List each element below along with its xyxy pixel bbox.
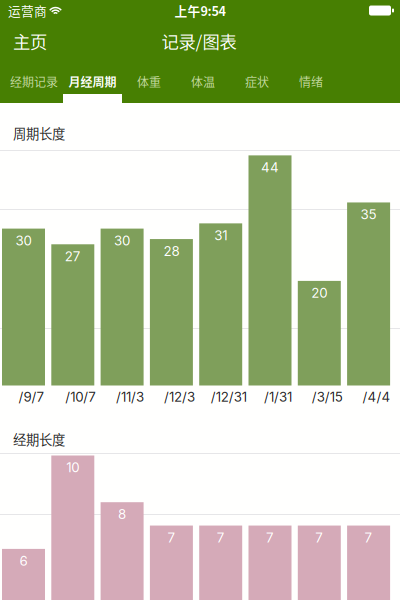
staticText: 主页 xyxy=(13,28,47,54)
button[interactable]: 体重 xyxy=(122,64,176,103)
staticText: /11/3 xyxy=(116,389,144,405)
staticText: /10/7 xyxy=(65,389,96,405)
staticText: /9/7 xyxy=(18,389,44,405)
staticText: /4/4 xyxy=(363,389,391,405)
button[interactable]: 情绪 xyxy=(284,64,338,103)
staticText: 35 xyxy=(361,206,377,222)
staticText: 上午9:54 xyxy=(174,1,225,20)
staticText: 6 xyxy=(19,553,27,569)
staticText: 周期长度 xyxy=(13,123,65,143)
staticText: /12/31 xyxy=(211,389,247,405)
staticText: 月经周期 xyxy=(68,73,116,90)
button[interactable]: 症状 xyxy=(230,64,284,103)
staticText: 运营商 xyxy=(8,1,47,20)
staticText: 7 xyxy=(217,529,225,546)
staticText: 7 xyxy=(167,529,175,546)
staticText: 30 xyxy=(114,232,130,249)
staticText: 27 xyxy=(65,248,81,264)
staticText: 经期长度 xyxy=(13,429,65,449)
staticText: /1/31 xyxy=(264,389,292,405)
staticText: /3/15 xyxy=(312,389,343,405)
staticText: 情绪 xyxy=(299,73,323,90)
staticText: 30 xyxy=(15,232,31,249)
staticText: /12/3 xyxy=(164,389,195,405)
button[interactable]: 主页 xyxy=(0,22,92,64)
button[interactable]: 月经周期 xyxy=(63,64,122,103)
staticText: 体重 xyxy=(137,73,161,90)
staticText: 44 xyxy=(261,159,279,175)
staticText: 20 xyxy=(311,285,327,301)
staticText: 28 xyxy=(163,243,179,259)
staticText: 31 xyxy=(214,227,227,243)
staticText: 7 xyxy=(365,529,373,546)
staticText: 记录/图表 xyxy=(161,28,236,54)
button[interactable]: 经期记录 xyxy=(5,64,63,103)
button[interactable]: 体温 xyxy=(176,64,230,103)
staticText: 体温 xyxy=(191,73,215,90)
staticText: 7 xyxy=(315,529,323,546)
staticText: 经期记录 xyxy=(10,73,58,90)
staticText: 8 xyxy=(118,506,126,522)
staticText: 7 xyxy=(266,529,274,546)
staticText: 10 xyxy=(66,459,79,475)
staticText: 症状 xyxy=(245,73,269,90)
